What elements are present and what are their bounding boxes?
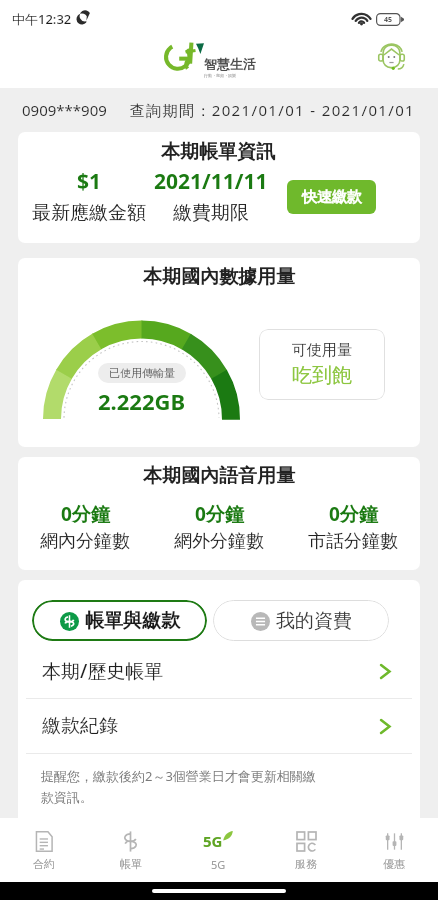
staticText: 本期國內語音用量 [143, 464, 295, 488]
staticText: 0分鐘 [61, 501, 110, 527]
staticText: 0分鐘 [329, 501, 378, 527]
staticText: 快速繳款 [302, 188, 362, 207]
staticText: 吃到飽 [292, 363, 352, 388]
staticText: 網內分鐘數 [40, 530, 130, 553]
button[interactable]: 優惠 [350, 829, 438, 871]
staticText: 可使用量 [292, 341, 352, 360]
button[interactable]: 合約 [0, 829, 87, 871]
staticText: $1 [77, 167, 102, 196]
staticText: 本期/歷史帳單 [42, 658, 164, 684]
staticText: 智慧生活 [204, 56, 256, 72]
button[interactable]: Customer service [373, 40, 410, 77]
staticText: 中午12:32 [12, 10, 72, 28]
staticText: 2021/11/11 [154, 167, 268, 196]
staticText: 5G [211, 857, 226, 872]
staticText: 繳費期限 [173, 201, 249, 225]
staticText: 網外分鐘數 [174, 530, 264, 553]
staticText: 45 [384, 15, 393, 25]
staticText: 帳單與繳款 [85, 609, 180, 633]
staticText: 查詢期間：2021/01/01 - 2021/01/01 [130, 100, 416, 120]
button[interactable]: 帳單 [87, 829, 174, 871]
staticText: 提醒您，繳款後約2～3個營業日才會更新相關繳款資訊。 [41, 767, 326, 806]
staticText: 本期國內數據用量 [143, 265, 295, 289]
staticText: 我的資費 [276, 609, 352, 633]
staticText: 帳單 [120, 857, 142, 871]
staticText: 2.222GB [98, 386, 186, 416]
button[interactable]: 服務 [262, 829, 350, 871]
staticText: 行動・寬頻・娛樂 [204, 73, 236, 78]
staticText: 0909***909 [22, 100, 107, 120]
button[interactable]: 快速繳款 [287, 180, 376, 214]
button[interactable]: 帳單與繳款 [32, 600, 207, 641]
staticText: 本期帳單資訊 [161, 140, 275, 164]
staticText: 優惠 [383, 857, 405, 871]
button[interactable]: 5G [174, 829, 262, 872]
button[interactable]: 我的資費 [213, 600, 389, 641]
staticText: 市話分鐘數 [308, 530, 398, 553]
staticText: 0分鐘 [195, 501, 244, 527]
staticText: 最新應繳金額 [32, 201, 146, 225]
button[interactable]: 繳款紀錄 [18, 699, 420, 753]
staticText: 服務 [295, 857, 317, 871]
staticText: 繳款紀錄 [42, 714, 118, 738]
staticText: 5G [203, 831, 223, 851]
staticText: 合約 [33, 857, 55, 871]
button[interactable]: 本期/歷史帳單 [18, 644, 420, 698]
staticText: 已使用傳輸量 [109, 366, 175, 380]
